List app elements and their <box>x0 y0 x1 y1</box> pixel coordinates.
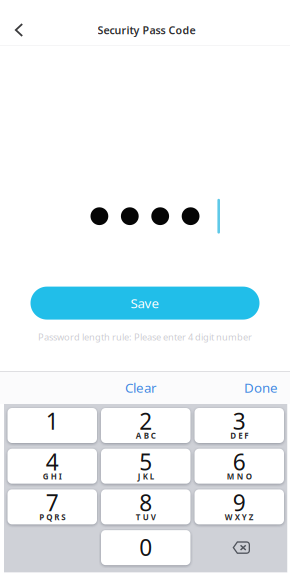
staticText: TUV <box>136 512 156 522</box>
staticText: 0 <box>139 532 152 562</box>
staticText: JKL <box>138 471 154 482</box>
staticText: 9 <box>233 487 246 517</box>
staticText: GHI <box>43 471 62 482</box>
staticText: 3 <box>233 406 246 436</box>
button[interactable]: 5 <box>101 449 190 484</box>
staticText: Save <box>130 294 159 312</box>
staticText: 5 <box>139 447 152 477</box>
button[interactable]: 1 <box>7 408 97 443</box>
staticText: ABC <box>136 430 156 441</box>
staticText: 4 <box>46 447 59 477</box>
button[interactable]: 8 <box>101 489 190 524</box>
button[interactable]: 7 <box>7 489 97 524</box>
staticText: DEF <box>230 430 248 441</box>
button[interactable]: 4 <box>7 449 97 484</box>
staticText: 1 <box>46 406 59 436</box>
staticText: PQRS <box>39 512 65 522</box>
button[interactable]: Save <box>0 287 290 320</box>
staticText: Password length rule: Please enter 4 dig… <box>38 331 252 343</box>
button[interactable]: Done <box>235 373 287 402</box>
staticText: 8 <box>139 487 152 517</box>
staticText: 7 <box>46 487 59 517</box>
staticText: MNO <box>227 471 252 482</box>
button[interactable]: 3 <box>194 408 284 443</box>
staticText: Security Pass Code <box>97 23 195 37</box>
button[interactable]: 0 <box>101 530 190 565</box>
button[interactable]: Clear <box>116 373 166 402</box>
button[interactable]: Delete <box>194 530 284 565</box>
staticText: WXYZ <box>225 512 254 522</box>
staticText: Clear <box>125 379 157 396</box>
staticText: Done <box>244 379 278 396</box>
button[interactable]: 6 <box>194 449 284 484</box>
button[interactable]: Back <box>0 15 36 45</box>
button[interactable]: 2 <box>101 408 190 443</box>
staticText: 6 <box>233 447 246 477</box>
staticText: 2 <box>139 406 152 436</box>
button[interactable]: 9 <box>194 489 284 524</box>
